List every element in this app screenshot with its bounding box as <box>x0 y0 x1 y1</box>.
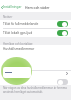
button[interactable]: Tillåt få fullmeddelande <box>0 20 71 28</box>
button[interactable] <box>0 79 71 85</box>
button[interactable]: Tillåt lokalt gps-ljud <box>0 29 71 37</box>
button[interactable]: Back <box>0 5 24 9</box>
staticText: När någon av dina hushållsmedlemmar är h… <box>3 86 67 94</box>
button[interactable]: Hushållsmedlemmar <box>0 45 71 53</box>
staticText: Hem och väder <box>25 5 50 10</box>
staticText: Tillåt få fullmeddelande <box>3 22 57 26</box>
other: Back <box>1 6 3 9</box>
other: Open <box>66 72 68 75</box>
staticText: Hemläge och bortaläge <box>3 42 33 46</box>
staticText: Inställningar <box>3 5 22 9</box>
staticText: Tillåt lokalt gps-ljud <box>3 31 57 35</box>
staticText: Notiser <box>3 15 13 19</box>
staticText: Hushållsmedlemmar <box>3 47 35 51</box>
button[interactable]: Open <box>0 71 71 79</box>
button[interactable] <box>3 67 31 78</box>
